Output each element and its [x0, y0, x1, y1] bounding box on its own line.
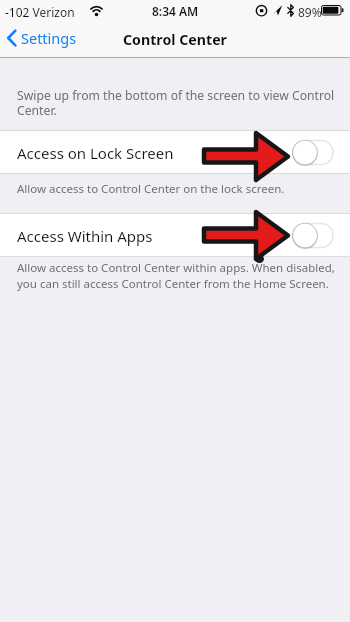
staticText: Settings [21, 28, 77, 48]
staticText: Access Within Apps [17, 226, 153, 246]
button[interactable] [292, 139, 334, 166]
staticText: Allow access to Control Center within ap… [17, 260, 335, 292]
staticText: Control Center [123, 30, 227, 49]
staticText: -102 Verizon [5, 4, 75, 20]
staticText: Access on Lock Screen [17, 143, 174, 163]
button[interactable]: Access on Lock Screen [0, 130, 350, 174]
button[interactable]: Access Within Apps [0, 213, 350, 257]
staticText: Allow access to Control Center on the lo… [17, 181, 285, 197]
staticText: 8:34 AM [152, 3, 199, 19]
staticText: Swipe up from the bottom of the screen t… [17, 87, 335, 119]
button[interactable]: Settings [6, 26, 77, 50]
button[interactable] [292, 222, 334, 249]
staticText: 89% [298, 4, 322, 20]
